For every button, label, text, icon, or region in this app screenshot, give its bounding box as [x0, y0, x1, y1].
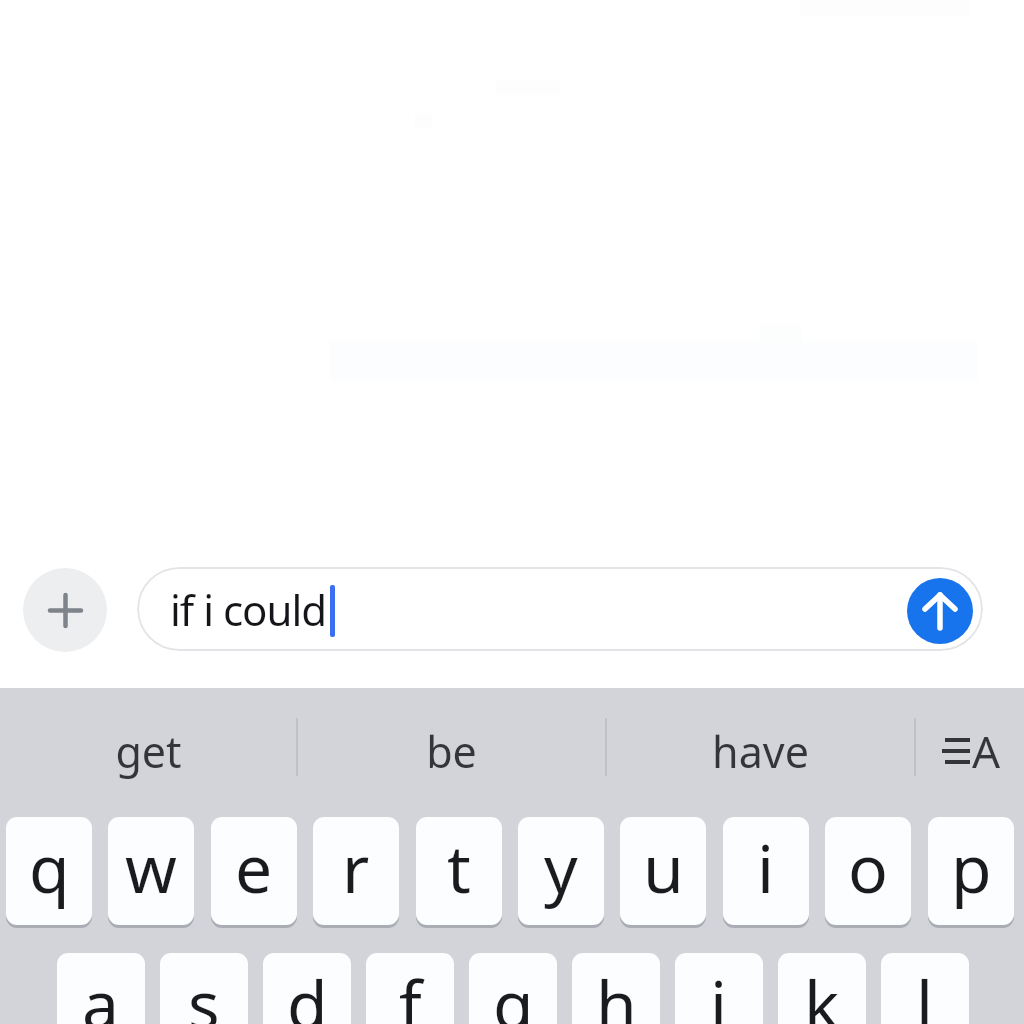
staticText: t: [447, 822, 471, 912]
button[interactable]: be: [297, 688, 606, 814]
staticText: if i could: [170, 581, 327, 638]
button[interactable]: j: [675, 953, 763, 1024]
staticText: have: [712, 722, 809, 781]
button[interactable]: A: [916, 688, 1024, 814]
button[interactable]: q: [6, 817, 92, 925]
staticText: d: [287, 958, 328, 1024]
button[interactable]: u: [620, 817, 706, 925]
staticText: o: [848, 822, 888, 912]
staticText: e: [235, 822, 273, 912]
staticText: p: [951, 822, 992, 912]
staticText: be: [426, 722, 477, 781]
button[interactable]: f: [366, 953, 454, 1024]
button[interactable]: r: [313, 817, 399, 925]
button[interactable]: get: [0, 688, 297, 814]
staticText: j: [710, 958, 728, 1024]
button[interactable]: d: [263, 953, 351, 1024]
staticText: s: [188, 958, 220, 1024]
button[interactable]: p: [928, 817, 1014, 925]
staticText: a: [82, 958, 120, 1024]
staticText: g: [493, 958, 534, 1024]
staticText: w: [125, 822, 177, 912]
button[interactable]: if i could: [137, 567, 983, 651]
staticText: q: [29, 822, 70, 912]
staticText: get: [115, 722, 182, 781]
button[interactable]: a: [57, 953, 145, 1024]
staticText: i: [757, 822, 775, 912]
staticText: h: [596, 958, 637, 1024]
staticText: k: [804, 958, 840, 1024]
staticText: l: [916, 958, 934, 1024]
button[interactable]: l: [881, 953, 969, 1024]
staticText: u: [643, 822, 684, 912]
button[interactable]: i: [723, 817, 809, 925]
button[interactable]: t: [416, 817, 502, 925]
button[interactable]: w: [108, 817, 194, 925]
button[interactable]: s: [160, 953, 248, 1024]
staticText: r: [342, 822, 370, 912]
button[interactable]: [23, 568, 107, 652]
button[interactable]: have: [606, 688, 915, 814]
button[interactable]: [907, 578, 973, 644]
staticText: f: [399, 958, 422, 1024]
button[interactable]: y: [518, 817, 604, 925]
button[interactable]: o: [825, 817, 911, 925]
staticText: y: [544, 822, 578, 912]
button[interactable]: g: [469, 953, 557, 1024]
button[interactable]: h: [572, 953, 660, 1024]
button[interactable]: e: [211, 817, 297, 925]
staticText: A: [972, 721, 1001, 781]
button[interactable]: k: [778, 953, 866, 1024]
